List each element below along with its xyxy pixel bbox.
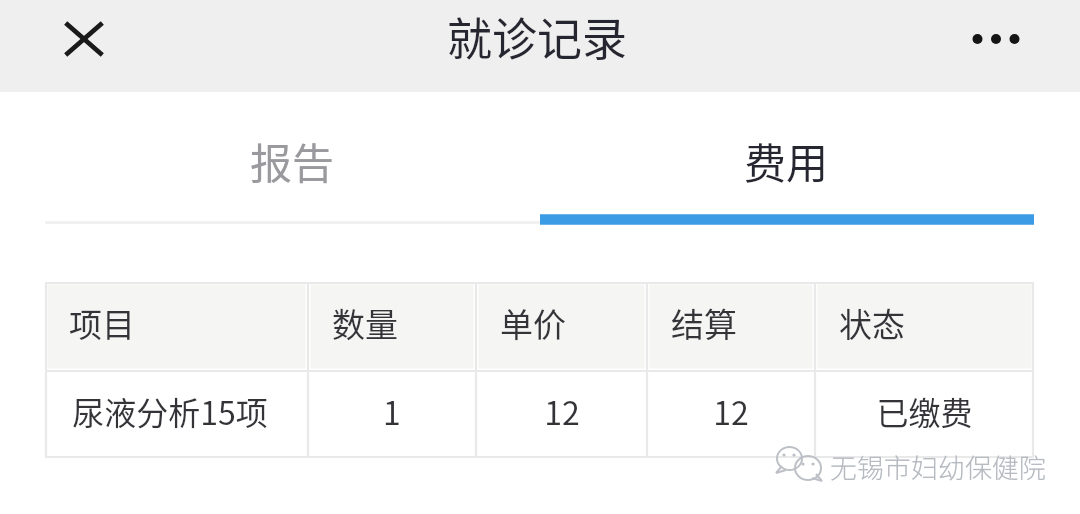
button[interactable]: 报告 bbox=[45, 92, 539, 224]
staticText: 单价 bbox=[500, 299, 566, 347]
staticText: 状态 bbox=[839, 299, 905, 347]
staticText: 项目 bbox=[69, 299, 135, 347]
staticText: 12 bbox=[713, 388, 749, 434]
button[interactable]: 尿液分析15项 bbox=[45, 371, 1034, 458]
staticText: 无锡市妇幼保健院 bbox=[830, 447, 1046, 486]
staticText: 12 bbox=[544, 388, 580, 434]
staticText: 1 bbox=[383, 388, 401, 434]
staticText: 结算 bbox=[671, 299, 737, 347]
staticText: 费用 bbox=[744, 130, 829, 191]
button[interactable]: Close bbox=[48, 5, 120, 73]
button[interactable]: 费用 bbox=[539, 92, 1034, 224]
staticText: 数量 bbox=[332, 299, 398, 347]
button[interactable]: More options bbox=[952, 8, 1040, 70]
staticText: 就诊记录 bbox=[447, 4, 628, 69]
staticText: 报告 bbox=[250, 130, 335, 191]
staticText: 尿液分析15项 bbox=[72, 388, 268, 434]
staticText: 已缴费 bbox=[876, 388, 973, 434]
